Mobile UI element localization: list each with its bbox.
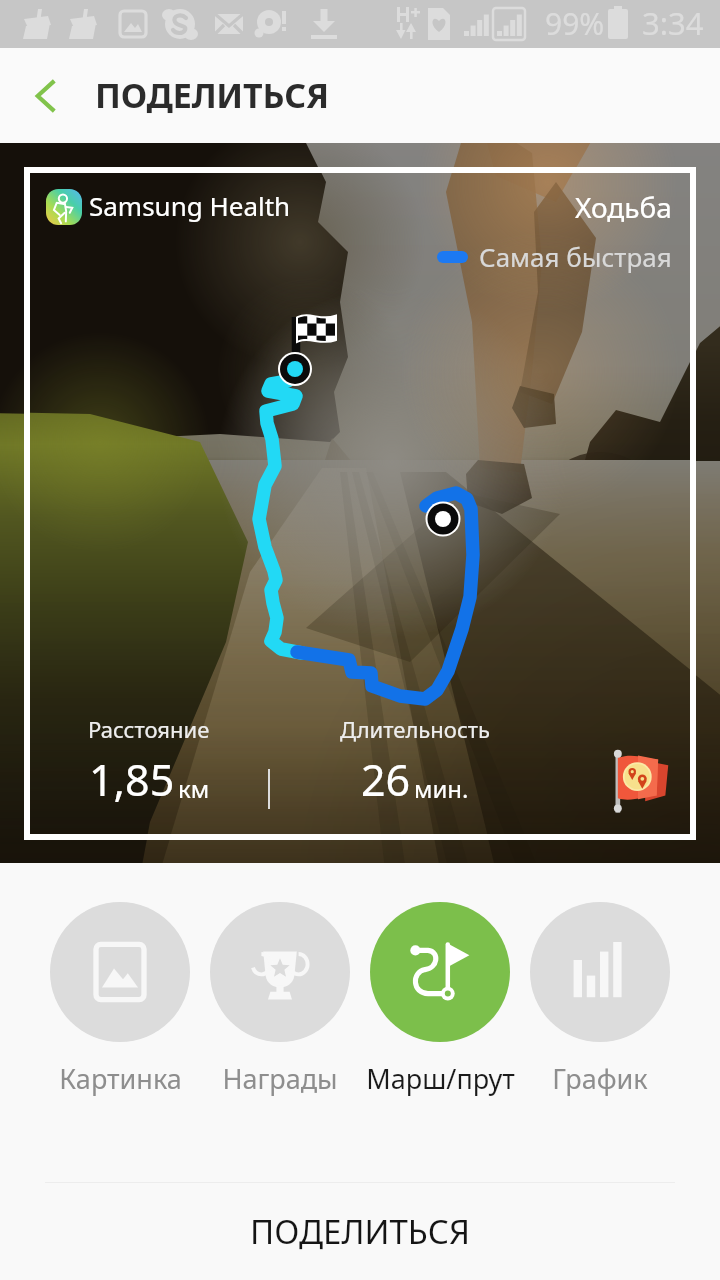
staticText: Ходьба (575, 188, 672, 226)
button[interactable]: Марш/прут (360, 863, 520, 1097)
button[interactable]: Back (0, 48, 92, 143)
staticText: км (178, 772, 210, 805)
staticText: ПОДЕЛИТЬСЯ (250, 1209, 470, 1254)
staticText: Награды (222, 1060, 338, 1097)
staticText: График (552, 1060, 648, 1097)
staticText: Самая быстрая (479, 239, 672, 274)
button[interactable]: Картинка (40, 863, 200, 1097)
staticText: 99% (545, 3, 605, 44)
staticText: Картинка (59, 1060, 182, 1097)
staticText: 1,85 (89, 750, 175, 809)
staticText: мин. (414, 772, 469, 805)
button[interactable]: ПОДЕЛИТЬСЯ (0, 1183, 720, 1280)
button[interactable]: Награды (200, 863, 360, 1097)
staticText: 3:34 (642, 2, 704, 44)
staticText: Samsung Health (89, 188, 291, 223)
button[interactable]: График (520, 863, 680, 1097)
staticText: Длительность (340, 714, 490, 744)
staticText: Расстояние (88, 714, 210, 744)
staticText: ПОДЕЛИТЬСЯ (95, 72, 329, 118)
staticText: Марш/прут (366, 1060, 515, 1097)
staticText: 26 (361, 750, 411, 809)
